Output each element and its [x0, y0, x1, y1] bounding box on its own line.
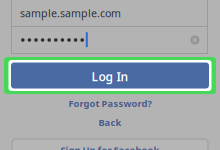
staticText: Sign Up for Facebook	[60, 144, 159, 150]
button[interactable]: Clear text	[186, 31, 204, 49]
staticText: Forgot Password?	[68, 97, 151, 110]
staticText: Back	[98, 116, 121, 129]
button[interactable]: Log In	[4, 57, 216, 94]
staticText: sample.sample.com	[20, 6, 121, 20]
button[interactable]: Sign Up for Facebook	[12, 139, 208, 150]
button[interactable]: Forgot Password?	[0, 97, 220, 110]
staticText: Log In	[91, 68, 128, 84]
button[interactable]: Back	[0, 116, 220, 129]
